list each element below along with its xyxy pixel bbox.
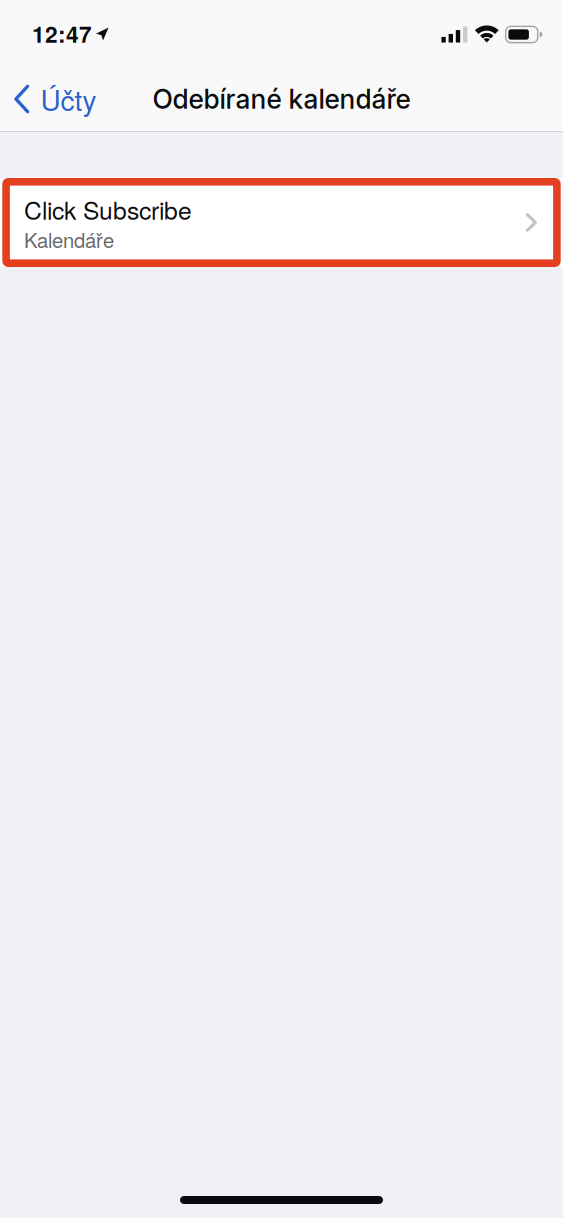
staticText: Účty [40,79,96,119]
button[interactable]: Click Subscribe [0,178,563,267]
staticText: 12:47 [32,17,92,50]
staticText: Kalendáře [24,225,114,254]
staticText: Click Subscribe [24,191,192,227]
button[interactable]: Účty [0,73,108,125]
staticText: Odebírané kalendáře [152,83,410,115]
